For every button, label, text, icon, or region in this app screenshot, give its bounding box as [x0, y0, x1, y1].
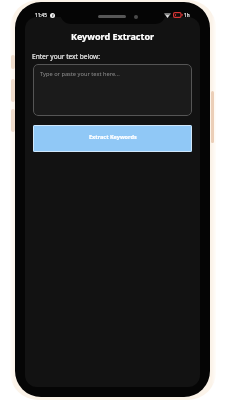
staticText: Type or paste your text here...: [40, 70, 120, 78]
other: Battery: [173, 12, 183, 18]
staticText: Keyword Extractor: [25, 30, 200, 42]
button[interactable]: Extract Keywords: [33, 125, 192, 152]
staticText: Enter your text below:: [32, 52, 100, 61]
staticText: 11:45: [35, 12, 47, 18]
staticText: Extract Keywords: [89, 133, 137, 140]
staticText: 1h: [184, 12, 190, 18]
staticText: f: [52, 13, 54, 18]
other: Wifi signal: [164, 12, 171, 18]
button[interactable]: Type or paste your text here...: [33, 64, 192, 116]
